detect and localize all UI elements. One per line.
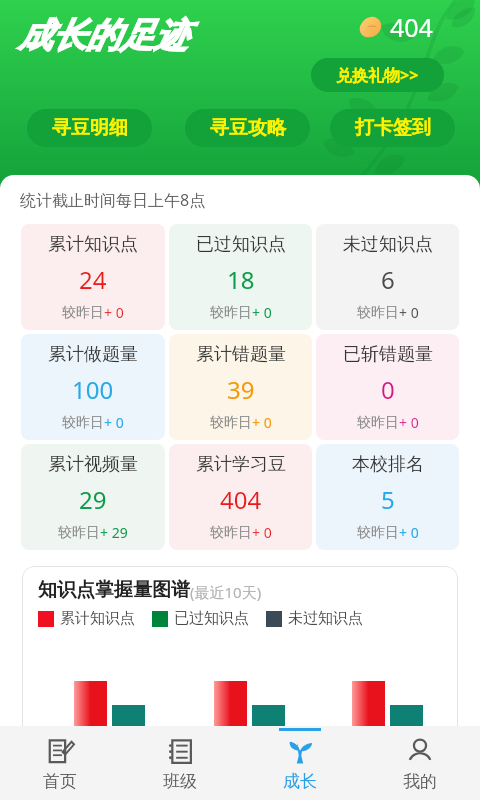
staticText: 24	[79, 263, 107, 296]
staticText: 较昨日	[62, 414, 104, 432]
staticText: 404	[390, 10, 433, 44]
staticText: 0	[381, 373, 395, 406]
staticText: 较昨日	[210, 304, 252, 322]
staticText: 100	[72, 373, 114, 406]
staticText: 较昨日	[210, 414, 252, 432]
staticText: 较昨日	[357, 414, 399, 432]
button[interactable]: 打卡签到	[330, 109, 455, 147]
staticText: 未过知识点	[288, 609, 363, 628]
staticText: 我的	[403, 771, 437, 792]
staticText: + 0	[104, 303, 124, 322]
button[interactable]: 累计做题量	[21, 334, 165, 440]
staticText: 成长的足迹	[18, 14, 188, 57]
staticText: 已过知识点	[196, 233, 286, 256]
staticText: 39	[227, 373, 255, 406]
button[interactable]: 我的	[360, 726, 480, 800]
staticText: 本校排名	[352, 453, 424, 476]
staticText: 未过知识点	[343, 233, 433, 256]
staticText: + 0	[252, 413, 272, 432]
staticText: 404	[220, 483, 262, 516]
staticText: 29	[79, 483, 107, 516]
staticText: 打卡签到	[355, 116, 431, 140]
staticText: 较昨日	[58, 524, 100, 542]
staticText: 累计错题量	[196, 343, 286, 366]
button[interactable]: 累计错题量	[169, 334, 312, 440]
staticText: 班级	[163, 771, 197, 792]
button[interactable]: 本校排名	[316, 444, 459, 550]
button[interactable]: 班级	[120, 726, 240, 800]
staticText: 18	[227, 263, 255, 296]
staticText: 寻豆明细	[52, 116, 128, 140]
staticText: 累计视频量	[48, 453, 138, 476]
button[interactable]: 累计学习豆	[169, 444, 312, 550]
button[interactable]: 已过知识点	[169, 224, 312, 330]
staticText: 寻豆攻略	[210, 116, 286, 140]
staticText: + 0	[104, 413, 124, 432]
button[interactable]: 寻豆明细	[27, 109, 152, 147]
staticText: 已过知识点	[174, 609, 249, 628]
button[interactable]: 未过知识点	[316, 224, 459, 330]
staticText: + 0	[399, 523, 419, 542]
staticText: 累计知识点	[60, 609, 135, 628]
staticText: 较昨日	[62, 304, 104, 322]
staticText: 首页	[43, 771, 77, 792]
staticText: 兑换礼物>>	[336, 64, 419, 86]
button[interactable]: 首页	[0, 726, 120, 800]
staticText: 5	[381, 483, 395, 516]
staticText: 较昨日	[210, 524, 252, 542]
button[interactable]: 寻豆攻略	[185, 109, 310, 147]
staticText: 6	[381, 263, 395, 296]
staticText: 累计做题量	[48, 343, 138, 366]
staticText: 统计截止时间每日上午8点	[20, 189, 206, 211]
staticText: 已斩错题量	[343, 343, 433, 366]
staticText: + 29	[100, 523, 128, 542]
button[interactable]: 兑换礼物>>	[311, 58, 444, 92]
staticText: 较昨日	[357, 524, 399, 542]
staticText: + 0	[399, 303, 419, 322]
staticText: 较昨日	[357, 304, 399, 322]
button[interactable]: 累计视频量	[21, 444, 165, 550]
staticText: (最近10天)	[190, 582, 262, 602]
staticText: + 0	[399, 413, 419, 432]
button[interactable]: 已斩错题量	[316, 334, 459, 440]
staticText: 累计知识点	[48, 233, 138, 256]
staticText: + 0	[252, 523, 272, 542]
staticText: 知识点掌握量图谱	[38, 578, 190, 602]
button[interactable]: 知识点掌握量图谱	[22, 566, 458, 751]
staticText: 累计学习豆	[196, 453, 286, 476]
staticText: + 0	[252, 303, 272, 322]
button[interactable]: 成长	[240, 726, 360, 800]
button[interactable]: 累计知识点	[21, 224, 165, 330]
staticText: 成长	[283, 771, 317, 792]
